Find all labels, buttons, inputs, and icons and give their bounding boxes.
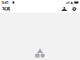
staticText: 9:41 bbox=[1, 0, 8, 5]
staticText: 写真 bbox=[2, 6, 10, 11]
button[interactable]: Account bbox=[61, 5, 68, 13]
button[interactable]: Settings bbox=[71, 5, 78, 13]
